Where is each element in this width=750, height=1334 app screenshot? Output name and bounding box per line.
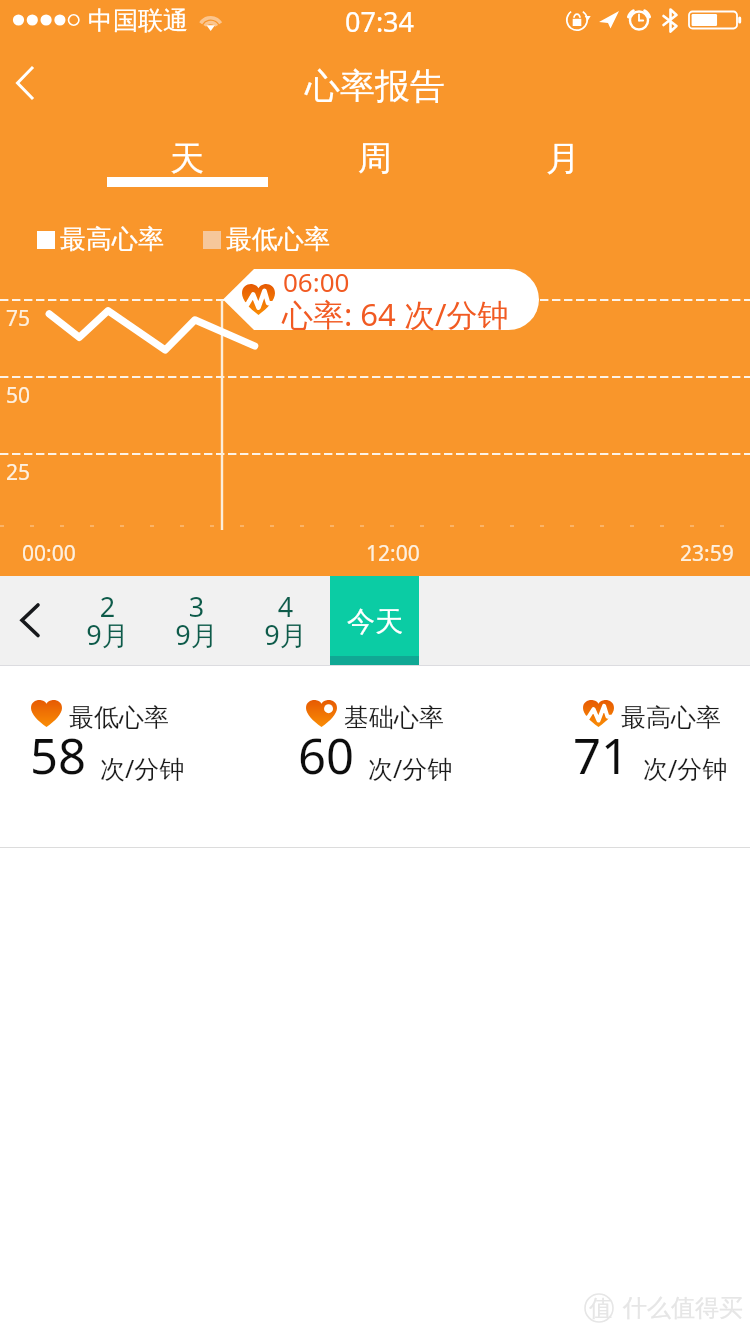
staticText: 周 xyxy=(358,137,392,180)
staticText: 次/分钟 xyxy=(368,751,453,785)
staticText: 最低心率 xyxy=(69,702,169,733)
staticText: 基础心率 xyxy=(344,702,444,733)
staticText: 3 xyxy=(152,588,241,625)
button[interactable]: 基础心率 xyxy=(294,693,524,813)
button[interactable]: 最高心率 xyxy=(571,693,750,813)
staticText: 最低心率 xyxy=(226,223,330,256)
button[interactable]: Previous day xyxy=(0,576,63,666)
staticText: 58 xyxy=(30,722,87,789)
button[interactable]: 3 xyxy=(152,576,241,666)
staticText: 次/分钟 xyxy=(643,751,728,785)
staticText: 次/分钟 xyxy=(100,751,185,785)
button[interactable]: 月 xyxy=(469,128,657,190)
staticText: 9月 xyxy=(63,616,152,653)
staticText: 值 xyxy=(589,1294,612,1323)
button[interactable]: 最高心率 xyxy=(37,223,330,256)
button[interactable]: Back xyxy=(0,40,60,128)
staticText: 今天 xyxy=(347,604,403,639)
staticText: 9月 xyxy=(152,616,241,653)
staticText: 心率报告 xyxy=(0,64,750,108)
staticText: 23:59 xyxy=(680,539,734,568)
staticText: 06:00 xyxy=(283,264,350,299)
staticText: 月 xyxy=(546,137,580,180)
staticText: 9月 xyxy=(241,616,330,653)
staticText: 25 xyxy=(6,458,31,487)
button[interactable]: 4 xyxy=(241,576,330,666)
staticText: 07:34 xyxy=(345,3,415,40)
staticText: 00:00 xyxy=(22,539,76,568)
button[interactable]: 06:00 xyxy=(223,269,539,330)
staticText: 71 xyxy=(573,722,630,789)
staticText: 最高心率 xyxy=(621,702,721,733)
staticText: 天 xyxy=(170,137,204,180)
staticText: 什么值得买 xyxy=(623,1293,743,1323)
staticText: 心率: 64 次/分钟 xyxy=(282,293,509,335)
button[interactable]: 2 xyxy=(63,576,152,666)
staticText: 50 xyxy=(6,381,31,410)
staticText: 最高心率 xyxy=(60,223,164,256)
staticText: 75 xyxy=(6,304,31,333)
staticText: 2 xyxy=(63,588,152,625)
button[interactable]: 今天 xyxy=(330,576,419,666)
button[interactable]: 天 xyxy=(93,128,281,190)
staticText: 12:00 xyxy=(366,539,420,568)
staticText: 4 xyxy=(241,588,330,625)
button[interactable]: 周 xyxy=(281,128,469,190)
staticText: 60 xyxy=(298,722,355,789)
button[interactable]: 最低心率 xyxy=(19,693,249,813)
staticText: 中国联通 xyxy=(88,5,188,36)
